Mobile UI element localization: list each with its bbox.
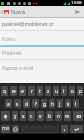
staticText: o [71,88,74,94]
staticText: Napsat e-mail [2,65,34,72]
button[interactable]: r [28,86,35,96]
button[interactable]: Period [61,125,68,133]
button[interactable]: Napsat e-mail [0,60,84,83]
staticText: f [35,101,37,107]
button[interactable]: q [1,86,8,96]
button[interactable]: z [45,86,51,96]
button[interactable]: Backspace [73,111,83,121]
staticText: e [21,88,24,94]
staticText: x [22,113,25,119]
button[interactable]: w [10,86,17,96]
button[interactable]: v [37,111,44,121]
staticText: n [57,113,60,119]
button[interactable]: s [14,99,21,108]
staticText: 13:06 [71,0,82,6]
button[interactable]: Send [70,6,84,18]
button[interactable]: Emoji [12,125,19,133]
button[interactable]: t [37,86,43,96]
button[interactable]: c [28,111,35,121]
button[interactable]: l [73,99,79,108]
button[interactable]: o [69,86,75,96]
button[interactable]: d [23,99,30,108]
button[interactable]: e [19,86,26,96]
staticText: pavlicek@mobilenet.cz [2,21,54,28]
staticText: k [67,101,70,107]
button[interactable]: g [41,99,47,108]
staticText: Komu [2,36,16,43]
button[interactable]: Shift [1,111,10,121]
staticText: s [16,101,19,107]
staticText: g [43,101,46,107]
button[interactable]: p [77,86,83,96]
staticText: h [51,101,54,107]
button[interactable]: x [20,111,26,121]
staticText: c [30,113,33,119]
staticText: t [39,88,41,94]
button[interactable]: f [32,99,39,108]
button[interactable]: y [12,111,18,121]
button[interactable]: a [5,99,12,108]
staticText: Nová [11,8,25,16]
staticText: r [31,88,33,94]
staticText: w [12,88,16,94]
button[interactable]: pavlicek@mobilenet.cz [0,18,84,31]
staticText: b [48,113,51,119]
staticText: z [47,88,50,94]
button[interactable]: Enter [70,125,83,133]
staticText: j [59,101,61,107]
button[interactable]: b [46,111,53,121]
staticText: Předmět [2,50,22,57]
button[interactable]: m [64,111,71,121]
button[interactable]: ?123 [1,125,10,133]
button[interactable]: Komu [0,31,84,47]
staticText: y [14,113,17,119]
staticText: ?123 [2,127,9,131]
staticText: u [55,88,58,94]
button[interactable]: j [57,99,63,108]
button[interactable]: u [53,86,59,96]
button[interactable]: h [49,99,55,108]
staticText: p [79,88,82,94]
button[interactable]: k [65,99,71,108]
staticText: d [25,101,28,107]
staticText: a [7,101,10,107]
button[interactable]: Back [0,6,4,18]
staticText: v [39,113,42,119]
staticText: l [75,101,77,107]
staticText: m [65,113,70,119]
button[interactable]: Předmět [0,47,84,60]
staticText: q [3,88,6,94]
button[interactable]: i [61,86,67,96]
staticText: i [63,88,65,94]
button[interactable]: n [55,111,62,121]
